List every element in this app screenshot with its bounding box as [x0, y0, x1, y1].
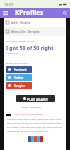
button[interactable]: Wanna One - Energetic: [4, 27, 66, 36]
button[interactable]: Google+: [6, 82, 32, 89]
staticText: Credit: Makestar: [0, 105, 62, 108]
button[interactable]: Twitter: [6, 74, 32, 81]
button[interactable]: Share: [37, 136, 40, 142]
button[interactable]: Search: [62, 10, 68, 16]
staticText: Whether Wanna One or Adele, here is your…: [7, 118, 64, 133]
staticText: PLAY AGAIN!: [27, 97, 48, 101]
staticText: Wanna One - Energetic: [11, 30, 40, 34]
staticText: Facebook: [14, 68, 27, 72]
button[interactable]: PLAY AGAIN!: [16, 95, 55, 102]
staticText: You have completed the quiz: [6, 40, 35, 43]
staticText: Adele - Breathe: [11, 21, 31, 25]
staticText: KProfiles: [15, 8, 44, 17]
staticText: I got 50 of 50 right: [6, 44, 54, 51]
staticText: Twitter: [14, 76, 24, 80]
staticText: 10:09: [4, 2, 14, 7]
button[interactable]: Facebook: [6, 66, 32, 73]
staticText: Google+: [14, 84, 26, 88]
button[interactable]: Share: [31, 136, 34, 142]
button[interactable]: Adele - Breathe: [4, 18, 66, 27]
button[interactable]: Share: [28, 136, 31, 142]
button[interactable]: Share: [34, 136, 37, 142]
staticText: Share your results:: [6, 61, 28, 64]
button[interactable]: Menu: [2, 10, 8, 16]
button[interactable]: Share: [40, 136, 43, 142]
staticText: Note: This article was made by: [14, 113, 44, 116]
staticText: in Kpop Quiz: [6, 52, 19, 55]
